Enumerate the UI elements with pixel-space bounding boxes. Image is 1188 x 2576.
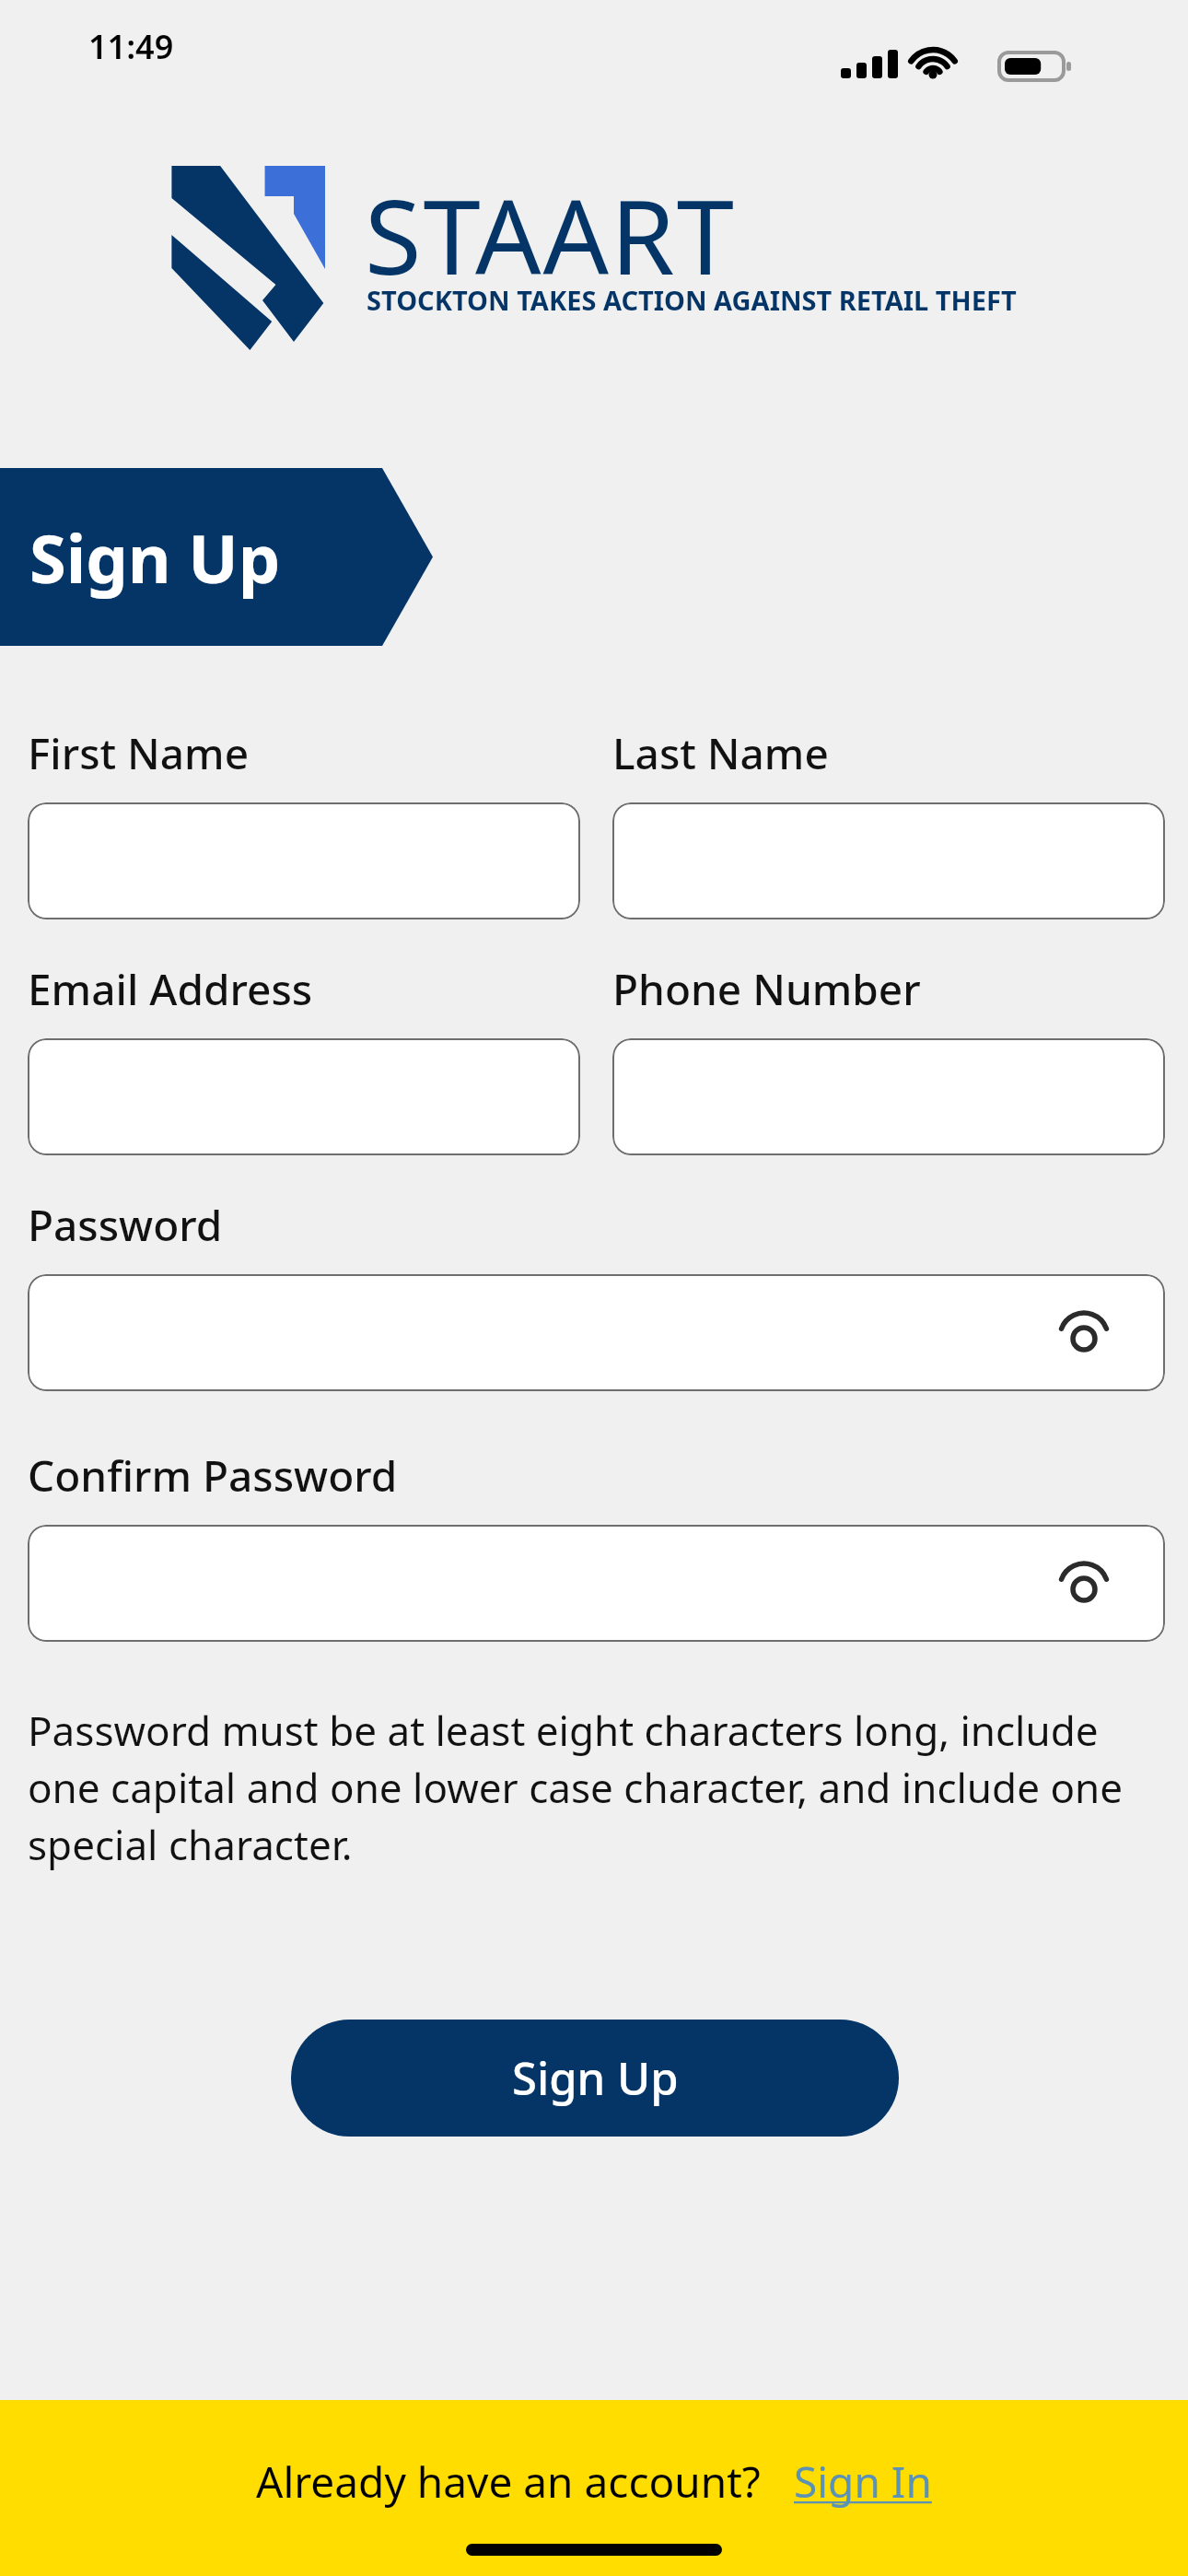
button[interactable]: Last Name: [612, 802, 1165, 919]
staticText: Email Address: [28, 960, 313, 1018]
staticText: Last Name: [612, 724, 829, 782]
button[interactable]: Sign Up: [0, 468, 433, 646]
staticText: Confirm Password: [28, 1446, 398, 1505]
button[interactable]: Password: [28, 1274, 1165, 1391]
staticText: STAART: [365, 164, 736, 305]
button[interactable]: Phone Number: [612, 1038, 1165, 1155]
button[interactable]: Sign Up: [291, 2020, 899, 2137]
staticText: STOCKTON TAKES ACTION AGAINST RETAIL THE…: [367, 282, 1017, 318]
staticText: Phone Number: [612, 960, 921, 1018]
staticText: Already have an account?: [256, 2453, 761, 2511]
button[interactable]: Confirm Password: [28, 1525, 1165, 1642]
staticText: Sign Up: [512, 2047, 679, 2109]
staticText: Sign Up: [29, 512, 281, 603]
staticText: First Name: [28, 724, 250, 782]
staticText: 11:49: [88, 24, 174, 69]
button[interactable]: First Name: [28, 802, 580, 919]
staticText: Sign In: [794, 2453, 932, 2511]
button[interactable]: Email Address: [28, 1038, 580, 1155]
button[interactable]: Show password: [1054, 1304, 1113, 1363]
button[interactable]: Sign In: [794, 2453, 932, 2511]
button[interactable]: Show password: [1054, 1554, 1113, 1613]
staticText: Password must be at least eight characte…: [28, 1703, 1165, 1872]
staticText: Password: [28, 1196, 223, 1254]
